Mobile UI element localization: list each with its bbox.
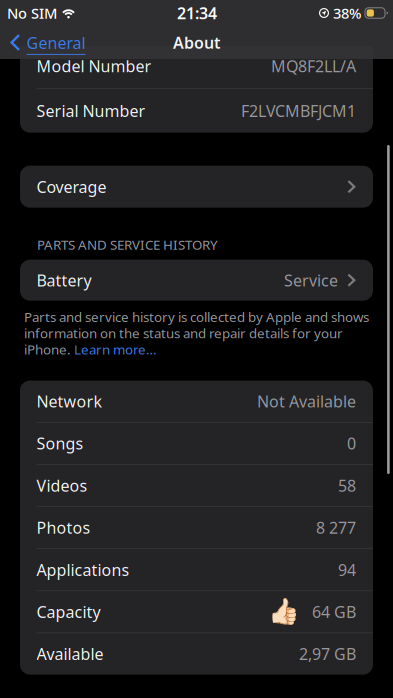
button[interactable]: Battery bbox=[0, 260, 393, 301]
staticText: Service bbox=[284, 270, 338, 291]
staticText: Videos bbox=[36, 475, 87, 496]
staticText: MQ8F2LL/A bbox=[271, 55, 356, 77]
staticText: 94 bbox=[338, 559, 356, 580]
staticText: Photos bbox=[36, 517, 90, 538]
staticText: Not Available bbox=[257, 391, 356, 412]
staticText: Learn more… bbox=[74, 341, 157, 358]
button[interactable]: Coverage bbox=[0, 166, 393, 208]
staticText: 21:34 bbox=[177, 2, 217, 24]
staticText: 2,97 GB bbox=[299, 643, 356, 664]
staticText: Songs bbox=[36, 433, 83, 454]
staticText: 8 277 bbox=[316, 517, 356, 538]
staticText: 👍🏻 bbox=[268, 597, 300, 626]
staticText: information on the status and repair det… bbox=[24, 324, 343, 342]
staticText: General bbox=[26, 32, 85, 53]
staticText: Model Number bbox=[36, 55, 151, 77]
staticText: F2LVCMBFJCM1 bbox=[241, 100, 356, 121]
staticText: 64 GB bbox=[312, 601, 356, 622]
staticText: Network bbox=[36, 391, 102, 412]
staticText: Coverage bbox=[36, 176, 106, 197]
button[interactable]: General bbox=[0, 26, 95, 59]
staticText: Available bbox=[36, 643, 103, 664]
staticText: Parts and service history is collected b… bbox=[24, 308, 369, 326]
staticText: 0 bbox=[347, 433, 356, 454]
staticText: No SIM bbox=[7, 3, 57, 23]
staticText: Battery bbox=[36, 270, 91, 291]
staticText: iPhone. bbox=[24, 341, 74, 358]
staticText: Capacity bbox=[36, 601, 100, 622]
staticText: PARTS AND SERVICE HISTORY bbox=[37, 236, 218, 253]
button[interactable]: Learn more… bbox=[74, 341, 157, 358]
staticText: 38% bbox=[333, 3, 361, 23]
staticText: Serial Number bbox=[36, 100, 145, 121]
staticText: Applications bbox=[36, 559, 129, 580]
staticText: About bbox=[173, 32, 220, 53]
staticText: 58 bbox=[338, 475, 356, 496]
